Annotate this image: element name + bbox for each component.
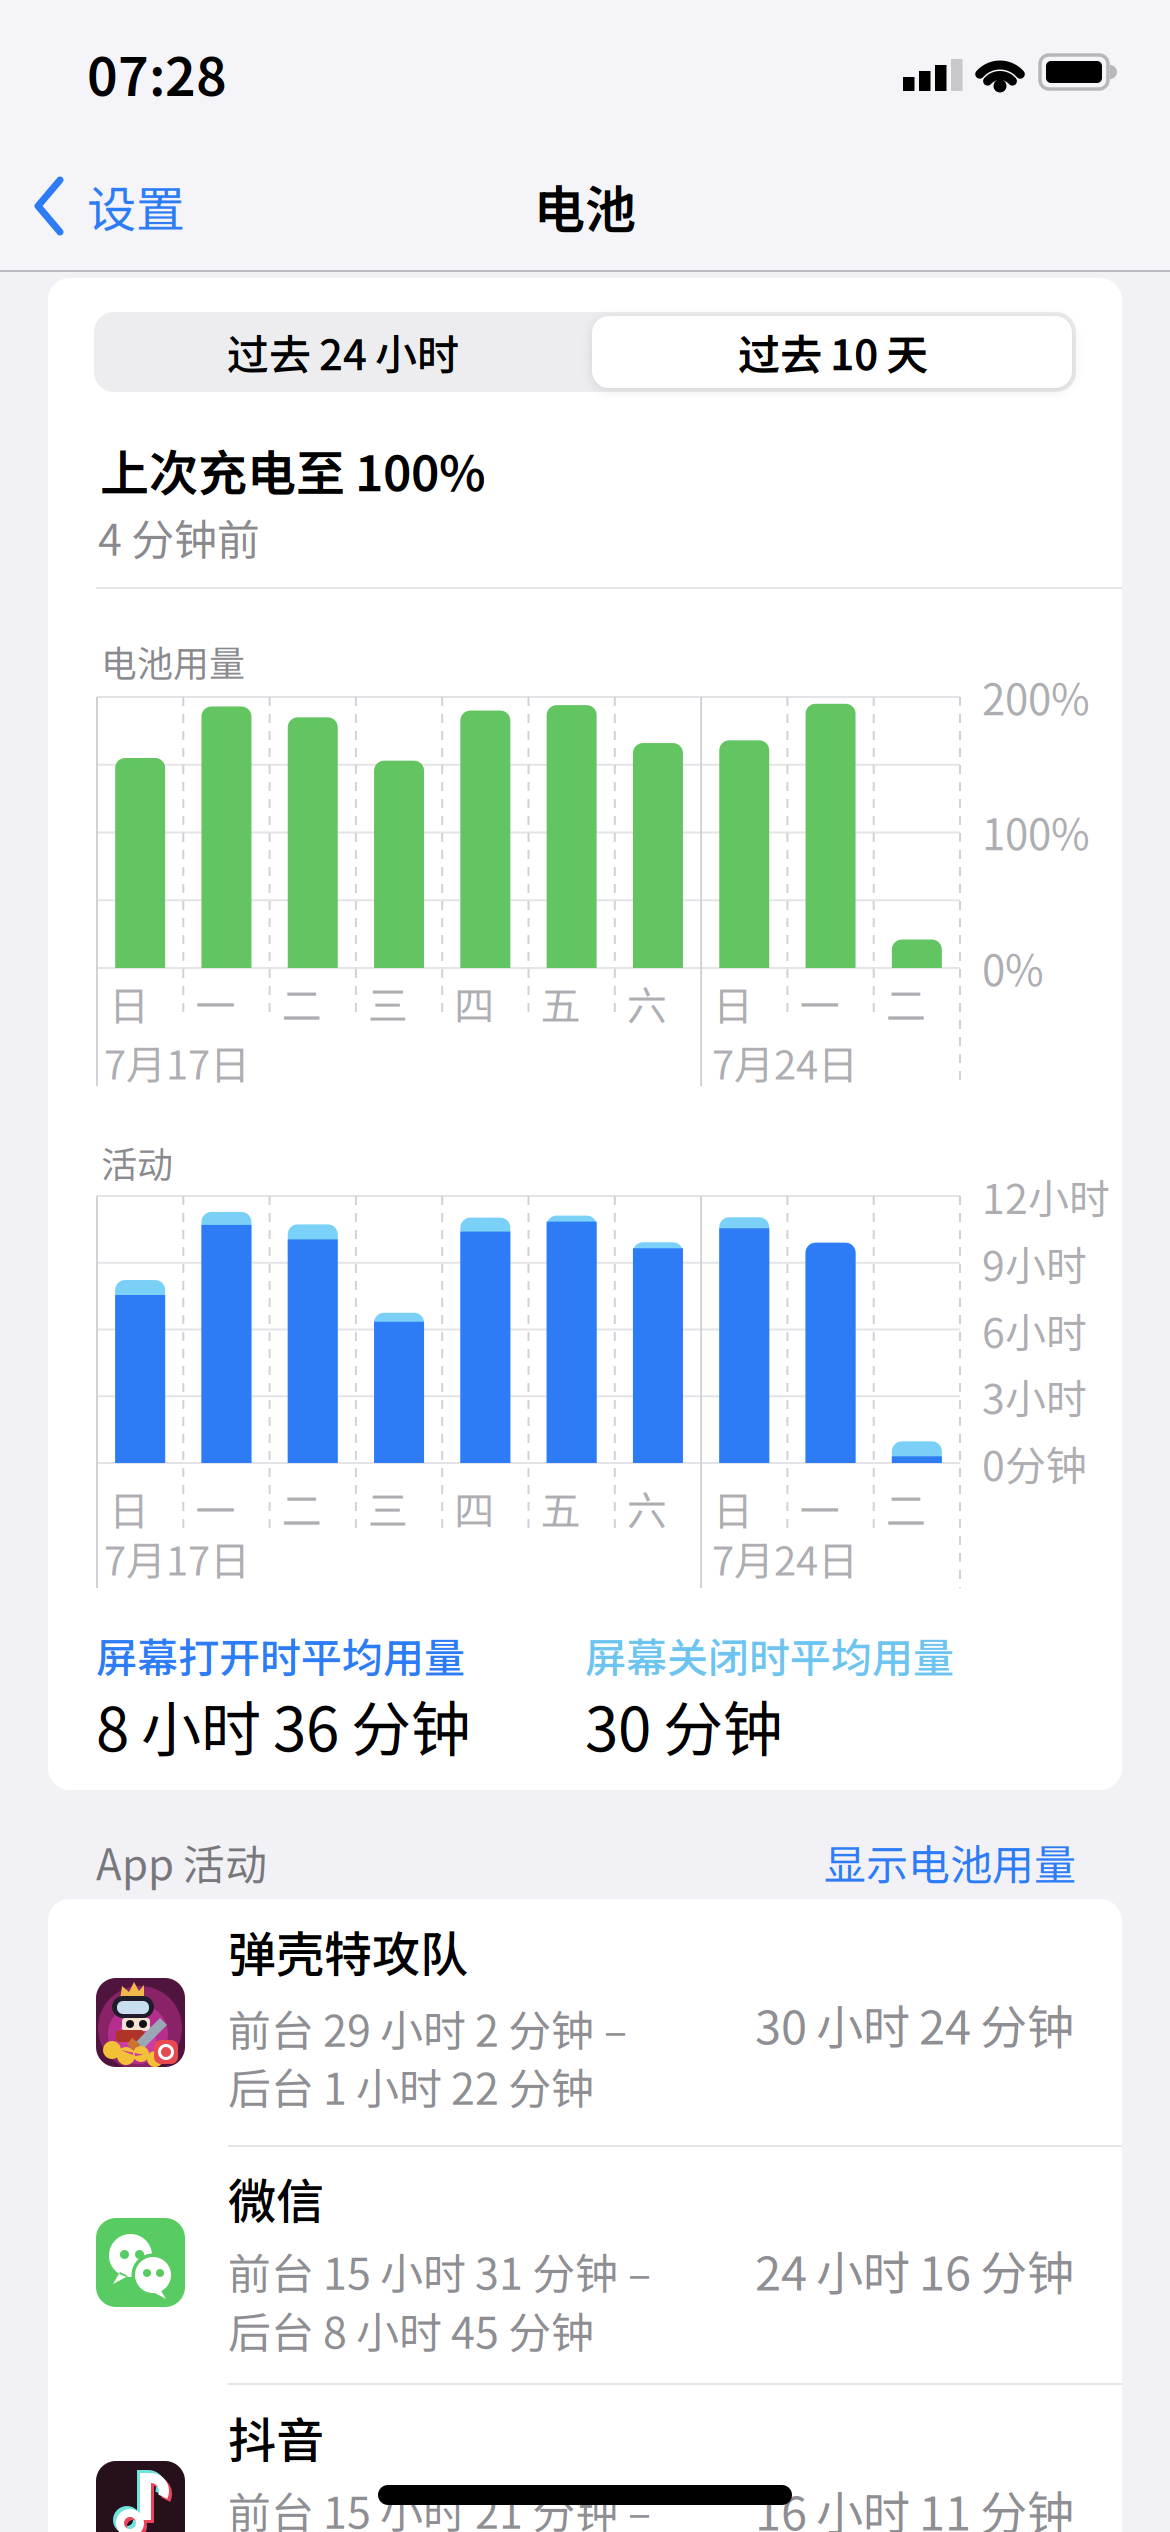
staticText: 电池 bbox=[534, 170, 636, 242]
staticText: 五 bbox=[540, 975, 580, 1031]
staticText: 6小时 bbox=[982, 1301, 1087, 1359]
staticText: 0% bbox=[982, 938, 1044, 998]
staticText: 7月24日 bbox=[712, 1530, 858, 1586]
staticText: 抖音 bbox=[228, 2403, 324, 2471]
staticText: 屏幕关闭时平均用量 bbox=[585, 1626, 954, 1684]
staticText: 六 bbox=[627, 1480, 667, 1536]
staticText: 30 小时 24 分钟 bbox=[755, 1991, 1074, 2057]
staticText: 一 bbox=[195, 1480, 235, 1536]
staticText: 日 bbox=[713, 1480, 753, 1536]
staticText: 过去 24 小时 bbox=[227, 322, 459, 382]
staticText: 五 bbox=[540, 1480, 580, 1536]
staticText: 07:28 bbox=[87, 36, 227, 110]
staticText: 一 bbox=[195, 975, 235, 1031]
staticText: 弹壳特攻队 bbox=[228, 1917, 468, 1985]
staticText: 三 bbox=[368, 1480, 408, 1536]
staticText: 前台 29 小时 2 分钟 – bbox=[228, 1998, 627, 2058]
staticText: 200% bbox=[982, 667, 1090, 727]
staticText: App 活动 bbox=[96, 1832, 267, 1892]
staticText: 微信 bbox=[228, 2164, 324, 2232]
staticText: 9小时 bbox=[982, 1234, 1087, 1292]
staticText: 3小时 bbox=[982, 1367, 1087, 1425]
staticText: 活动 bbox=[101, 1137, 173, 1187]
staticText: 过去 10 天 bbox=[738, 322, 928, 382]
staticText: 24 小时 16 分钟 bbox=[755, 2237, 1074, 2303]
staticText: 设置 bbox=[87, 171, 185, 241]
staticText: 30 分钟 bbox=[585, 1683, 783, 1767]
staticText: 二 bbox=[282, 1480, 322, 1536]
staticText: 四 bbox=[454, 975, 494, 1031]
staticText: 4 分钟前 bbox=[98, 507, 260, 567]
staticText: 前台 15 小时 21 分钟 – bbox=[228, 2480, 651, 2532]
staticText: 日 bbox=[109, 975, 149, 1031]
staticText: 日 bbox=[713, 975, 753, 1031]
staticText: 7月24日 bbox=[712, 1034, 858, 1090]
staticText: 六 bbox=[627, 975, 667, 1031]
staticText: 后台 8 小时 45 分钟 bbox=[228, 2300, 594, 2360]
staticText: 四 bbox=[454, 1480, 494, 1536]
staticText: 16 小时 11 分钟 bbox=[755, 2477, 1074, 2532]
staticText: 后台 1 小时 22 分钟 bbox=[228, 2056, 594, 2116]
staticText: 8 小时 36 分钟 bbox=[96, 1683, 471, 1767]
staticText: 0分钟 bbox=[982, 1434, 1087, 1492]
staticText: 7月17日 bbox=[104, 1530, 250, 1586]
staticText: 屏幕打开时平均用量 bbox=[96, 1626, 465, 1684]
staticText: 二 bbox=[886, 1480, 926, 1536]
staticText: 上次充电至 100% bbox=[100, 435, 486, 505]
staticText: 显示电池用量 bbox=[824, 1832, 1076, 1892]
staticText: 7月17日 bbox=[104, 1034, 250, 1090]
staticText: 前台 15 小时 31 分钟 – bbox=[228, 2241, 651, 2301]
staticText: 日 bbox=[109, 1480, 149, 1536]
staticText: 100% bbox=[982, 802, 1090, 862]
staticText: 电池用量 bbox=[101, 636, 245, 686]
staticText: 一 bbox=[799, 975, 839, 1031]
staticText: 一 bbox=[799, 1480, 839, 1536]
staticText: 三 bbox=[368, 975, 408, 1031]
staticText: 二 bbox=[282, 975, 322, 1031]
staticText: 二 bbox=[886, 975, 926, 1031]
staticText: 12小时 bbox=[982, 1167, 1110, 1225]
